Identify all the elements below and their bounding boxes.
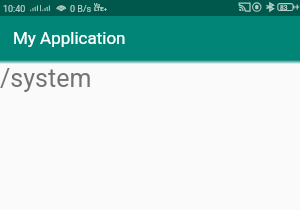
staticText: LTE+ <box>94 5 107 12</box>
staticText: /system <box>0 64 92 93</box>
staticText: Vo <box>94 2 100 8</box>
staticText: 0 B/s <box>70 4 92 15</box>
staticText: My Application <box>13 28 126 48</box>
staticText: 83 <box>280 4 288 12</box>
button[interactable]: /system <box>0 64 300 100</box>
staticText: 10:40 <box>3 4 26 15</box>
